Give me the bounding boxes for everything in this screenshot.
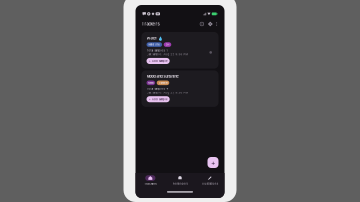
button[interactable]: + Add sample [146,58,170,64]
button[interactable]: Illustrations [195,175,224,185]
staticText: Last sample: Aug 27, 9:36 PM [146,53,187,56]
staticText: Reminders [172,182,187,185]
staticText: Water (ml) [148,43,160,46]
staticText: Last sample: Aug 27, 9:36 PM [146,91,187,94]
staticText: + Add sample [149,98,167,101]
staticText: Mood [148,81,153,84]
staticText: Total samples: 4 [146,87,168,90]
button[interactable]: Add tracker [207,157,218,168]
button[interactable]: Sync [198,22,206,26]
button[interactable]: Settings [206,22,215,26]
staticText: Trackers [141,21,159,27]
staticText: Sunshine [158,81,167,84]
staticText: Trackers [144,182,156,185]
staticText: 💧 [158,36,163,40]
staticText: Water [146,36,156,40]
staticText: Mood and sunshine [146,74,178,79]
button[interactable]: + Add sample [146,96,170,102]
staticText: Total samples: 1 [146,49,167,52]
staticText: + [211,158,215,167]
button[interactable]: Trackers [135,175,165,185]
button[interactable]: More options [215,22,218,26]
staticText: Illustrations [202,182,218,185]
button[interactable]: Reminders [165,175,195,185]
staticText: + Add sample [149,59,167,62]
staticText: GH [165,43,169,46]
